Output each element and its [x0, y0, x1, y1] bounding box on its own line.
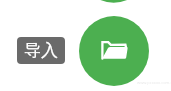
button[interactable]: 导入	[17, 37, 65, 64]
staticText: www.pcxxxx.com.cn	[137, 80, 171, 85]
staticText: 导入	[24, 40, 58, 61]
button[interactable]: Open folder	[79, 16, 149, 86]
